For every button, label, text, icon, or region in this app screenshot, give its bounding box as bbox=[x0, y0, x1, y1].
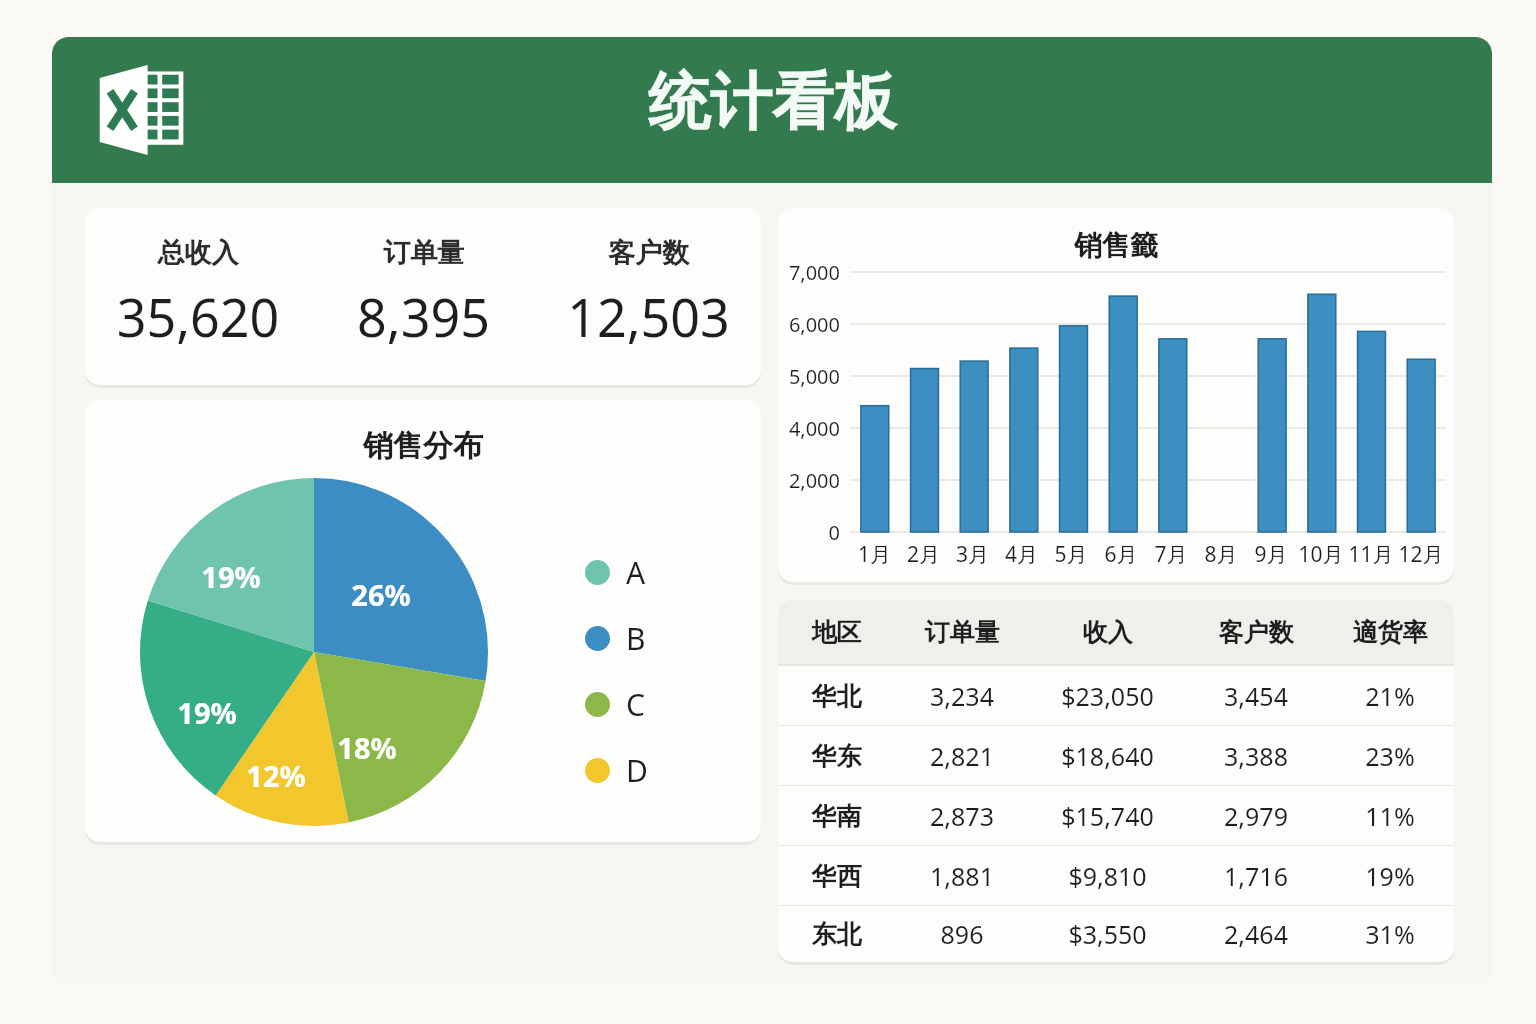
staticText: B bbox=[626, 618, 646, 659]
button[interactable]: 总收入 bbox=[85, 236, 311, 352]
staticText: 11% bbox=[1326, 799, 1454, 833]
staticText: 销售分布 bbox=[85, 427, 761, 465]
staticText: 华东 bbox=[778, 741, 895, 772]
staticText: 地区 bbox=[778, 617, 895, 648]
staticText: 客户数 bbox=[1186, 617, 1326, 648]
staticText: 35,620 bbox=[85, 281, 311, 352]
button[interactable]: 地区 bbox=[778, 600, 1454, 962]
staticText: 10月 bbox=[1296, 540, 1346, 569]
staticText: 31% bbox=[1326, 917, 1454, 951]
button[interactable]: 华东 bbox=[778, 726, 1454, 785]
staticText: 適货率 bbox=[1326, 617, 1454, 648]
staticText: $3,550 bbox=[1029, 917, 1186, 951]
staticText: 21% bbox=[1326, 679, 1454, 713]
staticText: 5,000 bbox=[778, 363, 840, 390]
staticText: 19% bbox=[177, 693, 237, 732]
staticText: 1,881 bbox=[895, 859, 1029, 893]
staticText: 统计看板 bbox=[52, 63, 1492, 141]
staticText: 8月 bbox=[1196, 540, 1246, 569]
staticText: 6,000 bbox=[778, 311, 840, 338]
button[interactable]: 华北 bbox=[778, 666, 1454, 725]
staticText: 3,388 bbox=[1186, 739, 1326, 773]
button[interactable]: A bbox=[585, 552, 646, 593]
staticText: 12,503 bbox=[536, 281, 761, 352]
staticText: 7月 bbox=[1146, 540, 1196, 569]
staticText: 订单量 bbox=[311, 236, 536, 270]
staticText: 4,000 bbox=[778, 415, 840, 442]
staticText: 2,464 bbox=[1186, 917, 1326, 951]
staticText: 896 bbox=[895, 917, 1029, 951]
staticText: 1月 bbox=[850, 540, 899, 569]
staticText: 华西 bbox=[778, 861, 895, 892]
staticText: 1,716 bbox=[1186, 859, 1326, 893]
staticText: $9,810 bbox=[1029, 859, 1186, 893]
staticText: 23% bbox=[1326, 739, 1454, 773]
button[interactable]: C bbox=[585, 684, 645, 725]
staticText: 9月 bbox=[1246, 540, 1296, 569]
staticText: 2,000 bbox=[778, 467, 840, 494]
staticText: C bbox=[626, 684, 645, 725]
other: Excel logo bbox=[95, 63, 189, 157]
staticText: A bbox=[626, 552, 646, 593]
staticText: 11月 bbox=[1346, 540, 1396, 569]
staticText: 2,821 bbox=[895, 739, 1029, 773]
button[interactable]: 东北 bbox=[778, 906, 1454, 962]
staticText: 2月 bbox=[899, 540, 948, 569]
staticText: 19% bbox=[201, 557, 261, 596]
button[interactable]: B bbox=[585, 618, 646, 659]
button[interactable]: 客户数 bbox=[536, 236, 761, 352]
staticText: 3,454 bbox=[1186, 679, 1326, 713]
button[interactable]: 销售分布 bbox=[85, 400, 761, 842]
button[interactable]: 销售籤 bbox=[778, 208, 1454, 582]
staticText: 12月 bbox=[1396, 540, 1446, 569]
button[interactable]: 总收入 bbox=[85, 208, 761, 385]
button[interactable]: 华南 bbox=[778, 786, 1454, 845]
staticText: 3月 bbox=[948, 540, 997, 569]
staticText: 6月 bbox=[1096, 540, 1146, 569]
button[interactable]: 华西 bbox=[778, 846, 1454, 905]
staticText: 华北 bbox=[778, 681, 895, 712]
staticText: 19% bbox=[1326, 859, 1454, 893]
staticText: 2,873 bbox=[895, 799, 1029, 833]
staticText: 客户数 bbox=[536, 236, 761, 270]
staticText: 华南 bbox=[778, 801, 895, 832]
staticText: $15,740 bbox=[1029, 799, 1186, 833]
staticText: 东北 bbox=[778, 919, 895, 950]
staticText: D bbox=[626, 750, 648, 791]
staticText: 总收入 bbox=[85, 236, 311, 270]
staticText: 4月 bbox=[997, 540, 1046, 569]
staticText: 7,000 bbox=[778, 259, 840, 286]
staticText: 3,234 bbox=[895, 679, 1029, 713]
staticText: 订单量 bbox=[895, 617, 1029, 648]
staticText: 12% bbox=[246, 756, 306, 795]
staticText: 0 bbox=[778, 519, 840, 546]
staticText: 收入 bbox=[1029, 617, 1186, 648]
staticText: 2,979 bbox=[1186, 799, 1326, 833]
staticText: 18% bbox=[337, 728, 397, 767]
button[interactable]: Excel logo bbox=[52, 37, 1492, 183]
button[interactable]: 地区 bbox=[778, 600, 1454, 664]
staticText: $18,640 bbox=[1029, 739, 1186, 773]
staticText: $23,050 bbox=[1029, 679, 1186, 713]
staticText: 8,395 bbox=[311, 281, 536, 352]
staticText: 26% bbox=[351, 575, 411, 614]
staticText: 5月 bbox=[1046, 540, 1096, 569]
button[interactable]: 订单量 bbox=[311, 236, 536, 352]
staticText: 销售籤 bbox=[778, 228, 1454, 263]
button[interactable]: D bbox=[585, 750, 648, 791]
